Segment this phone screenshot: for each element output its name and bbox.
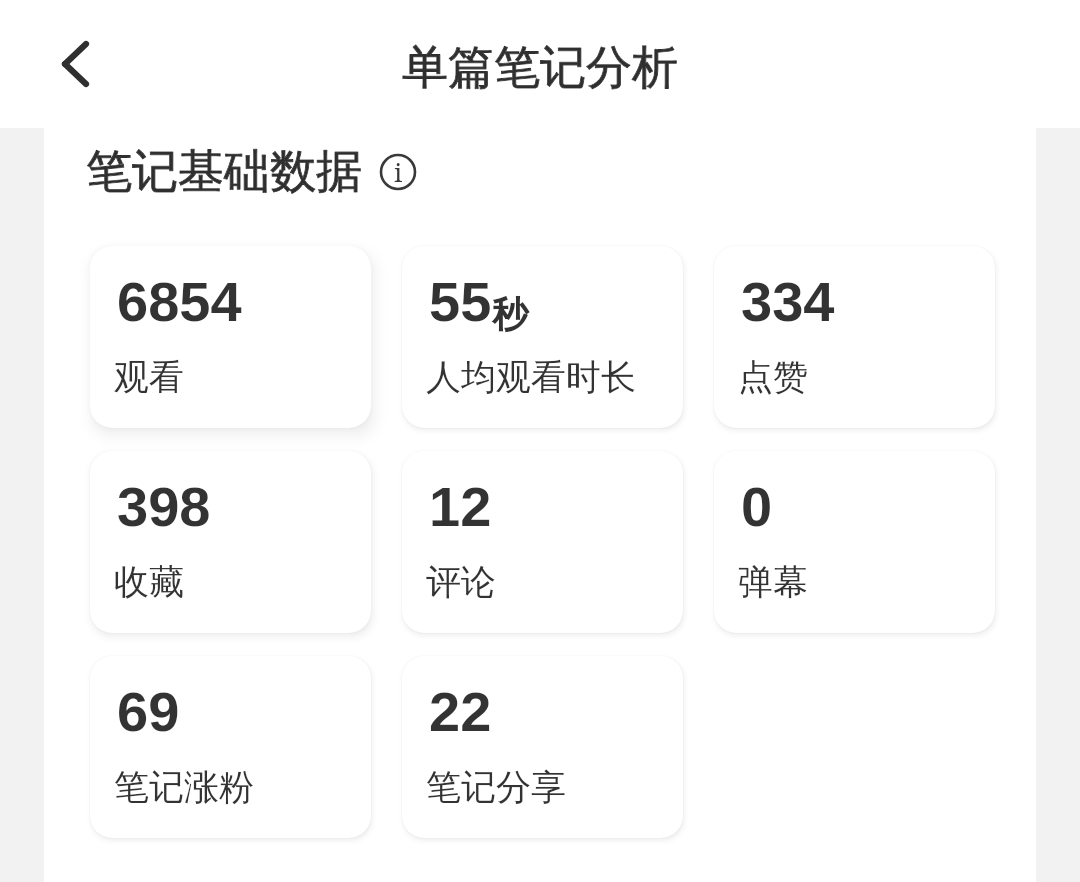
button[interactable]: 69: [90, 656, 371, 838]
staticText: 12: [429, 475, 492, 538]
staticText: i: [394, 154, 403, 189]
staticText: 秒: [492, 292, 528, 337]
staticText: 22: [429, 680, 492, 743]
staticText: 0: [741, 475, 773, 538]
button[interactable]: Back: [40, 28, 112, 100]
staticText: 人均观看时长: [426, 355, 636, 399]
staticText: 单篇笔记分析: [402, 39, 678, 97]
staticText: 69: [117, 680, 180, 743]
button[interactable]: 22: [402, 656, 683, 838]
staticText: 收藏: [114, 560, 184, 604]
staticText: 观看: [114, 355, 184, 399]
button[interactable]: 0: [714, 451, 995, 633]
staticText: 笔记基础数据: [86, 143, 362, 195]
staticText: 笔记分享: [426, 765, 566, 809]
staticText: 笔记基础数据: [86, 143, 362, 195]
staticText: 单篇笔记分析: [402, 39, 678, 97]
staticText: 笔记涨粉: [114, 765, 254, 809]
staticText: 398: [117, 475, 211, 538]
button[interactable]: About these metrics: [376, 150, 420, 194]
button[interactable]: 6854: [90, 246, 371, 428]
button[interactable]: 334: [714, 246, 995, 428]
button[interactable]: 55: [402, 246, 683, 428]
staticText: 6854: [117, 270, 242, 333]
button[interactable]: 398: [90, 451, 371, 633]
staticText: 弹幕: [738, 560, 808, 604]
staticText: 334: [741, 270, 835, 333]
staticText: 55: [429, 270, 492, 333]
staticText: 评论: [426, 560, 496, 604]
staticText: 点赞: [738, 355, 808, 399]
button[interactable]: 12: [402, 451, 683, 633]
